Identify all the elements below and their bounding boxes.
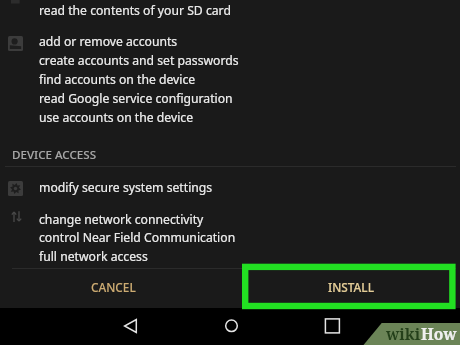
button[interactable]: Recent apps xyxy=(320,314,346,340)
staticText: add or remove accounts xyxy=(39,33,178,50)
staticText: How xyxy=(421,323,457,344)
staticText: modify secure system settings xyxy=(39,179,213,196)
staticText: CANCEL xyxy=(91,279,136,295)
staticText: change network connectivity xyxy=(39,211,204,228)
button[interactable]: INSTALL xyxy=(287,267,415,306)
button[interactable]: CANCEL xyxy=(49,267,177,306)
button[interactable]: Back xyxy=(118,314,144,340)
staticText: use accounts on the device xyxy=(39,109,194,126)
button[interactable]: Home xyxy=(219,314,245,340)
staticText: create accounts and set passwords xyxy=(39,52,239,69)
staticText: INSTALL xyxy=(328,279,374,295)
staticText: find accounts on the device xyxy=(39,71,196,88)
staticText: DEVICE ACCESS xyxy=(12,147,97,163)
staticText: full network access xyxy=(39,248,148,265)
staticText: read Google service configuration xyxy=(39,90,233,107)
staticText: read the contents of your SD card xyxy=(39,2,231,19)
staticText: wiki xyxy=(386,323,421,344)
staticText: control Near Field Communication xyxy=(39,229,236,246)
